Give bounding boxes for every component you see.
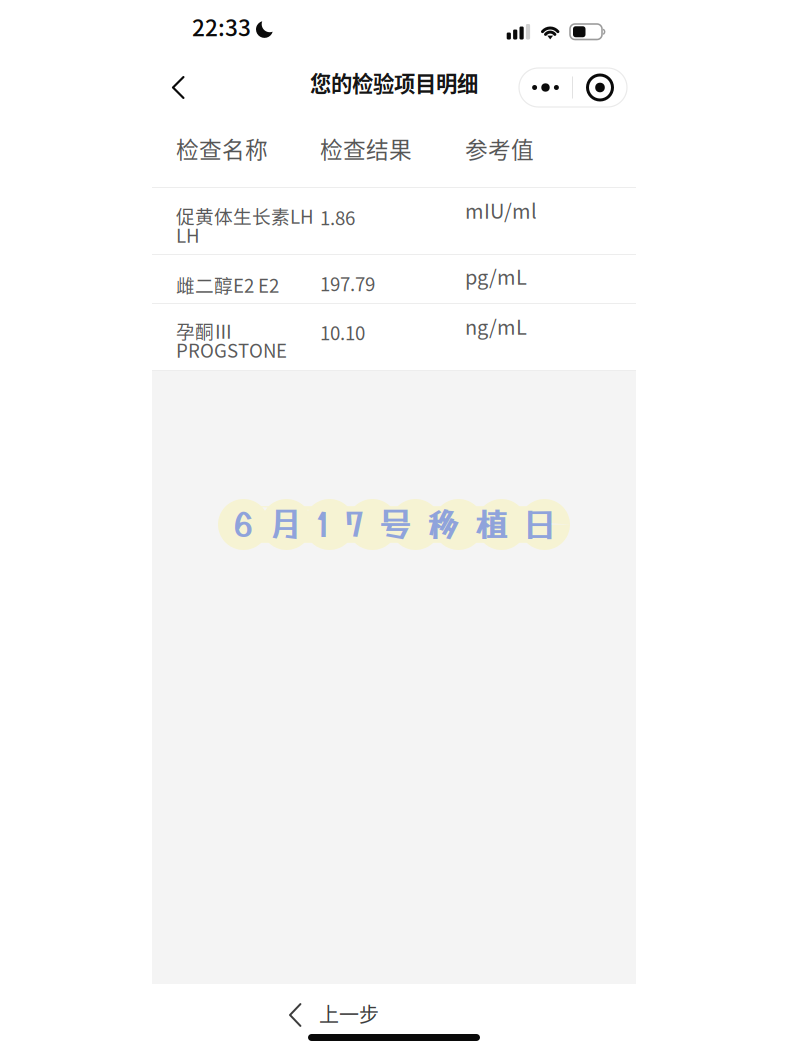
staticText: 孕酮Ⅲ: [176, 317, 233, 344]
staticText: 上一步: [319, 999, 379, 1028]
staticText: 197.79: [320, 269, 375, 296]
button[interactable]: Close: [573, 68, 627, 107]
staticText: 6月17号移植日: [233, 506, 555, 543]
button[interactable]: 上一步: [289, 1003, 379, 1027]
staticText: LH: [176, 221, 200, 248]
button[interactable]: More: [519, 68, 572, 107]
staticText: ng/mL: [465, 311, 527, 340]
button[interactable]: Back: [155, 63, 201, 111]
staticText: 1.86: [320, 203, 355, 230]
staticText: PROGSTONE: [176, 336, 287, 363]
staticText: 雌二醇E2 E2: [176, 271, 279, 298]
staticText: 参考值: [465, 132, 534, 165]
staticText: 检查结果: [320, 132, 412, 165]
staticText: 10.10: [320, 318, 365, 345]
staticText: 促黄体生长素LH: [176, 202, 314, 229]
staticText: 22:33: [192, 10, 251, 43]
staticText: 检查名称: [176, 132, 268, 165]
staticText: pg/mL: [465, 261, 527, 290]
staticText: 您的检验项目明细: [310, 67, 478, 98]
staticText: mIU/ml: [465, 195, 537, 224]
